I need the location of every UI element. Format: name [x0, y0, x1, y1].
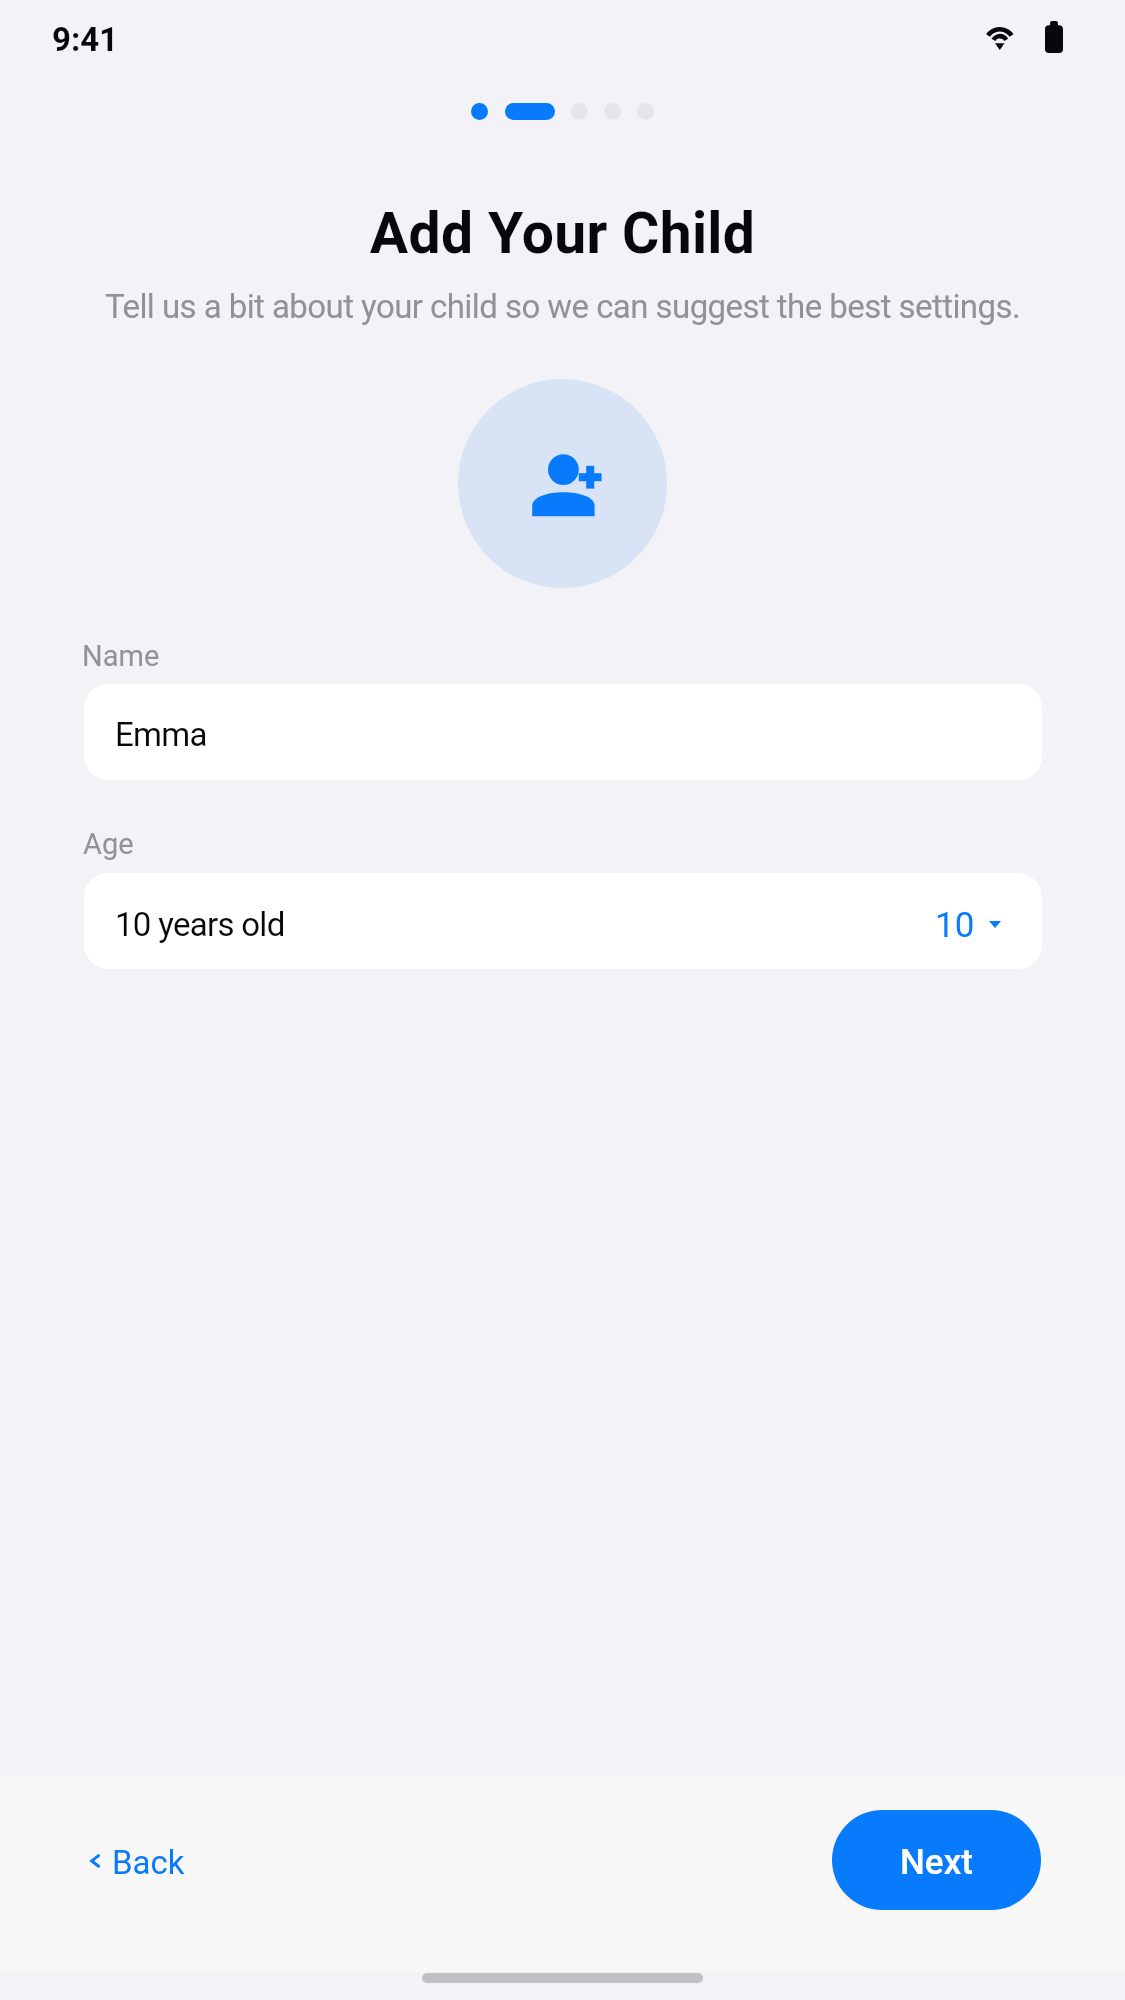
button[interactable]: Step 1 — [471, 103, 488, 120]
button[interactable]: Next — [832, 1810, 1041, 1910]
button[interactable]: Step 4 — [604, 103, 621, 120]
staticText: Emma — [115, 715, 207, 754]
staticText: Name — [82, 639, 160, 673]
button[interactable]: Back — [70, 1825, 202, 1885]
button[interactable]: Step 5 — [637, 103, 654, 120]
other: Wi-Fi — [987, 27, 1013, 51]
button[interactable]: Step 3 — [571, 103, 588, 120]
staticText: Age — [83, 827, 134, 861]
staticText: Tell us a bit about your child so we can… — [0, 287, 1125, 326]
button[interactable]: Emma — [84, 684, 1042, 780]
button[interactable]: Change age — [922, 891, 1022, 951]
other: Battery — [1045, 21, 1063, 53]
staticText: Add Your Child — [0, 200, 1125, 267]
staticText: 9:41 — [52, 20, 119, 59]
button[interactable]: 10 years old — [84, 873, 1042, 969]
staticText: Next — [900, 1842, 973, 1883]
staticText: 10 years old — [115, 905, 285, 944]
button[interactable]: Step 2, current — [505, 103, 555, 120]
staticText: 10 — [935, 905, 975, 946]
staticText: Back — [112, 1843, 185, 1882]
button[interactable]: Add child photo — [458, 379, 667, 588]
